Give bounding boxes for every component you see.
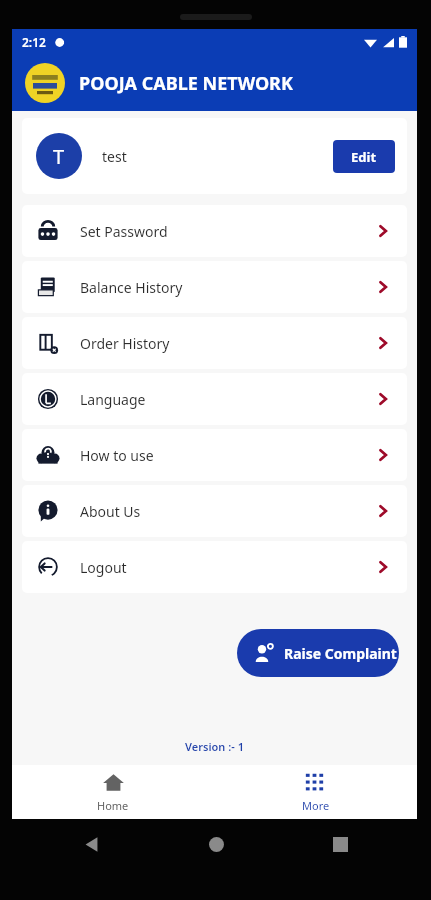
button[interactable]: Set Password xyxy=(22,205,407,257)
button[interactable]: Language xyxy=(22,373,407,425)
button[interactable]: Order History xyxy=(22,317,407,369)
staticText: Version :- 1 xyxy=(12,739,417,754)
button[interactable]: Raise Complaint xyxy=(237,629,399,677)
button[interactable]: More xyxy=(214,765,417,819)
staticText: More xyxy=(302,798,330,813)
staticText: Language xyxy=(80,390,146,409)
staticText: Edit xyxy=(351,148,377,166)
button[interactable]: T xyxy=(22,118,407,194)
staticText: POOJA CABLE NETWORK xyxy=(79,71,293,96)
staticText: Home xyxy=(97,798,129,813)
staticText: test xyxy=(102,147,127,166)
staticText: 2:12 xyxy=(22,34,46,50)
staticText: How to use xyxy=(80,446,154,465)
staticText: Balance History xyxy=(80,278,183,297)
staticText: Logout xyxy=(80,558,127,577)
other: Home xyxy=(208,836,225,853)
staticText: T xyxy=(53,143,65,170)
button[interactable]: Logout xyxy=(22,541,407,593)
button[interactable]: Balance History xyxy=(22,261,407,313)
staticText: Raise Complaint xyxy=(284,644,397,663)
button[interactable]: Edit xyxy=(333,140,395,173)
button[interactable]: About Us xyxy=(22,485,407,537)
staticText: Order History xyxy=(80,334,170,353)
other: Back xyxy=(83,836,100,853)
button[interactable]: How to use xyxy=(22,429,407,481)
button[interactable]: Home xyxy=(12,765,214,819)
staticText: About Us xyxy=(80,502,141,521)
staticText: Set Password xyxy=(80,222,168,241)
